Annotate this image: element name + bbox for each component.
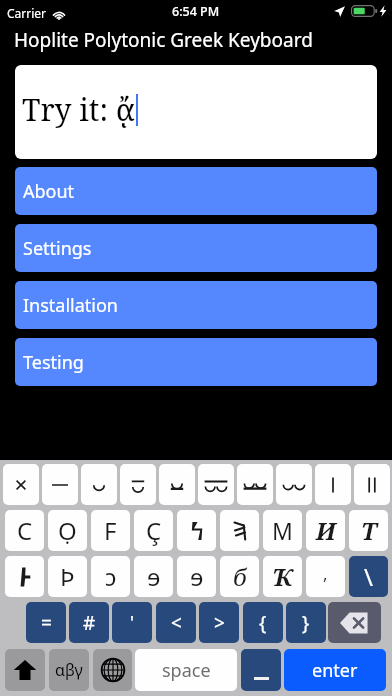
- staticText: }: [302, 610, 310, 636]
- button[interactable]: <: [156, 602, 196, 643]
- staticText: {: [259, 610, 267, 636]
- button[interactable]: Ç: [134, 510, 173, 551]
- staticText: Ọ: [58, 514, 77, 547]
- button[interactable]: [42, 464, 78, 505]
- button[interactable]: [241, 649, 281, 691]
- staticText: enter: [312, 658, 358, 683]
- button[interactable]: Try it: ᾄ: [15, 65, 377, 159]
- button[interactable]: [159, 464, 195, 505]
- button[interactable]: б: [220, 556, 259, 597]
- staticText: C: [17, 514, 33, 547]
- staticText: ɔ: [105, 560, 117, 593]
- button[interactable]: [198, 464, 234, 505]
- button[interactable]: About: [15, 167, 377, 215]
- staticText: ɘ: [190, 560, 204, 593]
- button[interactable]: [220, 510, 259, 551]
- staticText: space: [162, 658, 211, 683]
- button[interactable]: {: [243, 602, 283, 643]
- staticText: И: [316, 514, 336, 547]
- button[interactable]: >: [199, 602, 239, 643]
- staticText: =: [41, 610, 52, 636]
- button[interactable]: ɘ: [134, 556, 173, 597]
- button[interactable]: [5, 556, 44, 597]
- staticText: αβγ: [55, 659, 83, 681]
- staticText: Ҡ: [272, 560, 293, 593]
- button[interactable]: И: [306, 510, 345, 551]
- staticText: Settings: [23, 236, 92, 261]
- staticText: >: [214, 610, 225, 636]
- button[interactable]: Backspace: [328, 602, 381, 643]
- button[interactable]: C: [5, 510, 44, 551]
- staticText: ,: [323, 562, 328, 585]
- staticText: \: [364, 560, 373, 593]
- button[interactable]: [315, 464, 351, 505]
- button[interactable]: F: [91, 510, 130, 551]
- staticText: <: [171, 610, 182, 636]
- button[interactable]: Shift: [5, 649, 45, 691]
- button[interactable]: }: [286, 602, 326, 643]
- staticText: Hoplite Polytonic Greek Keyboard: [14, 27, 313, 53]
- button[interactable]: #: [69, 602, 109, 643]
- button[interactable]: Ọ: [48, 510, 87, 551]
- button[interactable]: Change keyboard: [93, 649, 132, 691]
- staticText: б: [233, 560, 247, 593]
- staticText: M: [272, 515, 293, 546]
- button[interactable]: Settings: [15, 224, 377, 272]
- staticText: Testing: [23, 350, 84, 375]
- button[interactable]: ': [112, 602, 152, 643]
- staticText: Installation: [23, 293, 118, 318]
- staticText: F: [104, 514, 117, 547]
- button[interactable]: [276, 464, 312, 505]
- button[interactable]: T: [349, 510, 388, 551]
- staticText: ɘ: [147, 560, 161, 593]
- button[interactable]: space: [135, 649, 237, 691]
- staticText: T: [361, 514, 377, 547]
- button[interactable]: [177, 510, 216, 551]
- staticText: Þ: [60, 560, 75, 593]
- button[interactable]: ,: [306, 556, 345, 597]
- button[interactable]: M: [263, 510, 302, 551]
- button[interactable]: =: [26, 602, 66, 643]
- staticText: 6:54 PM: [172, 3, 220, 20]
- staticText: Try it: ᾄ: [22, 89, 135, 130]
- staticText: Ç: [146, 514, 162, 547]
- staticText: Carrier: [7, 5, 47, 21]
- staticText: #: [83, 610, 96, 636]
- button[interactable]: Þ: [48, 556, 87, 597]
- button[interactable]: ɔ: [91, 556, 130, 597]
- button[interactable]: [237, 464, 273, 505]
- button[interactable]: \: [349, 556, 388, 597]
- button[interactable]: [81, 464, 117, 505]
- button[interactable]: enter: [284, 649, 386, 691]
- button[interactable]: ɘ: [177, 556, 216, 597]
- button[interactable]: Installation: [15, 281, 377, 329]
- staticText: ': [130, 610, 135, 635]
- button[interactable]: [354, 464, 390, 505]
- button[interactable]: [120, 464, 156, 505]
- staticText: About: [23, 179, 75, 204]
- button[interactable]: αβγ: [49, 649, 89, 691]
- button[interactable]: Testing: [15, 338, 377, 386]
- button[interactable]: [3, 464, 39, 505]
- button[interactable]: Ҡ: [263, 556, 302, 597]
